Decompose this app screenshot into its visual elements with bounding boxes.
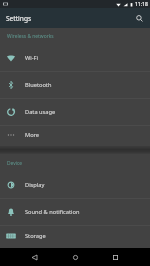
button[interactable]: Wi-Fi: [0, 45, 150, 72]
button[interactable]: Search: [129, 8, 149, 28]
button[interactable]: Display: [0, 172, 150, 199]
button[interactable]: Sound & notification: [0, 199, 150, 226]
staticText: Device: [7, 160, 23, 167]
button[interactable]: Storage: [0, 226, 150, 248]
staticText: Bluetooth: [25, 81, 52, 89]
button[interactable]: Bluetooth: [0, 72, 150, 99]
staticText: 11:18: [135, 1, 148, 8]
staticText: More: [25, 131, 40, 139]
button[interactable]: Back: [28, 251, 41, 264]
staticText: Wireless & networks: [7, 33, 54, 40]
staticText: Settings: [6, 14, 32, 23]
staticText: Display: [25, 181, 45, 189]
staticText: Storage: [25, 232, 46, 240]
staticText: Wi-Fi: [25, 54, 39, 62]
staticText: Data usage: [25, 108, 56, 116]
staticText: Sound & notification: [25, 208, 80, 216]
button[interactable]: More: [0, 126, 150, 146]
button[interactable]: Home: [69, 251, 82, 264]
button[interactable]: Data usage: [0, 99, 150, 126]
button[interactable]: Recent apps: [109, 251, 122, 264]
